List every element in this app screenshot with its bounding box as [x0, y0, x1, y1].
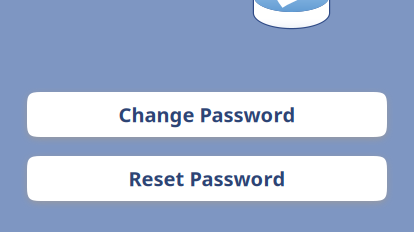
button[interactable]: Reset Password [27, 156, 387, 201]
staticText: Change Password [118, 101, 295, 128]
staticText: Reset Password [128, 165, 285, 192]
button[interactable]: Change Password [27, 92, 387, 137]
